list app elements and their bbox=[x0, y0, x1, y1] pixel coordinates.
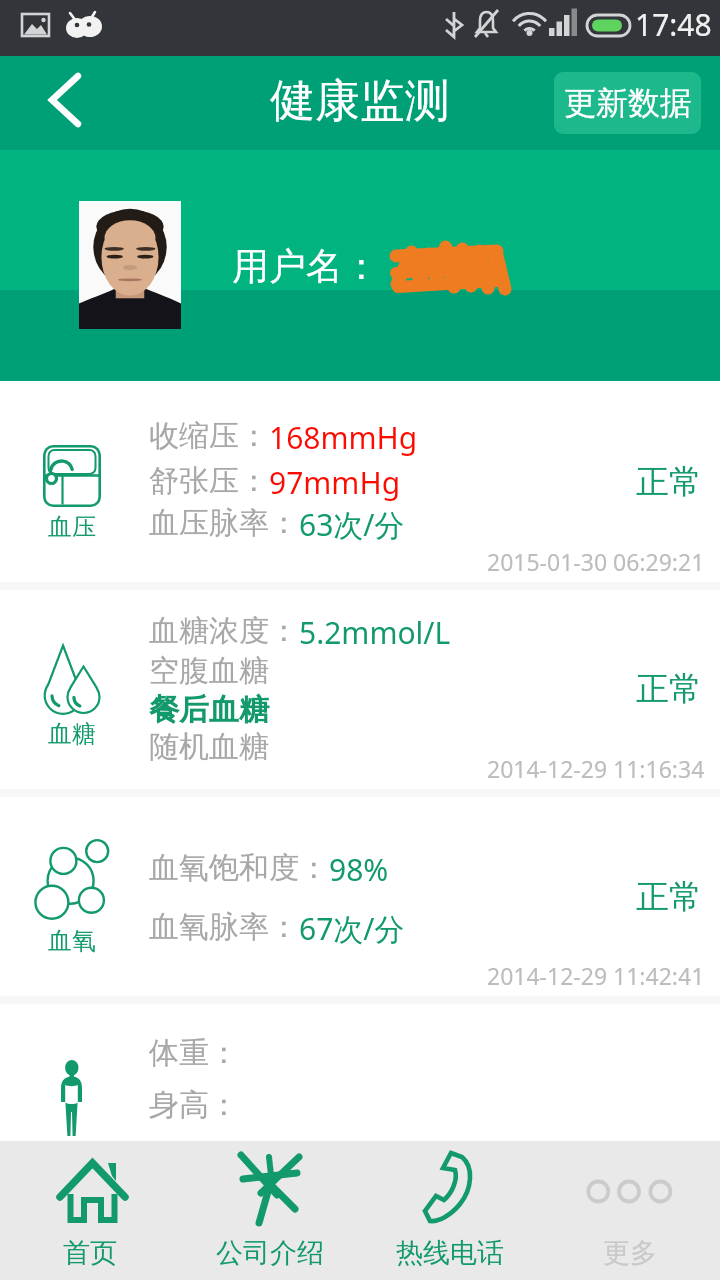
staticText: 正常 bbox=[636, 668, 702, 710]
staticText: 5.2mmol/L bbox=[299, 612, 451, 653]
staticText: 健康监测 bbox=[270, 73, 450, 130]
staticText: 收缩压： bbox=[149, 417, 269, 455]
button[interactable]: 公司介绍 bbox=[180, 1141, 360, 1280]
staticText: 血氧脉率： bbox=[149, 908, 299, 946]
button[interactable]: 首页 bbox=[0, 1141, 180, 1280]
staticText: 2015-01-30 06:29:21 bbox=[487, 546, 705, 577]
staticText: 首页 bbox=[63, 1236, 117, 1270]
staticText: 17:48 bbox=[635, 4, 712, 45]
button[interactable]: Back bbox=[30, 71, 94, 135]
staticText: 67次/分 bbox=[299, 908, 405, 949]
staticText: 血压脉率： bbox=[149, 504, 299, 542]
staticText: 更多 bbox=[603, 1236, 657, 1270]
staticText: 正常 bbox=[636, 461, 702, 503]
button[interactable]: 血氧 bbox=[0, 797, 720, 996]
staticText: 血压 bbox=[48, 512, 96, 542]
staticText: 97mmHg bbox=[269, 462, 401, 503]
button[interactable]: 热线电话 bbox=[360, 1141, 540, 1280]
staticText: 舒张压： bbox=[149, 462, 269, 500]
button[interactable]: 血压 bbox=[0, 381, 720, 582]
button[interactable]: 血糖 bbox=[0, 590, 720, 789]
staticText: 更新数据 bbox=[564, 83, 692, 123]
button[interactable]: 体重： bbox=[0, 1004, 720, 1140]
staticText: 用户名： bbox=[232, 243, 380, 290]
staticText: 168mmHg bbox=[269, 417, 418, 458]
staticText: 血糖浓度： bbox=[149, 612, 299, 650]
staticText: 63次/分 bbox=[299, 504, 405, 545]
staticText: 身高： bbox=[149, 1086, 239, 1124]
staticText: 热线电话 bbox=[396, 1236, 504, 1270]
staticText: 餐后血糖 bbox=[149, 691, 269, 729]
staticText: 98% bbox=[329, 849, 389, 890]
button[interactable]: 更新数据 bbox=[554, 72, 701, 134]
staticText: 2014-12-29 11:16:34 bbox=[487, 753, 705, 784]
staticText: 空腹血糖 bbox=[149, 652, 269, 690]
button[interactable]: 更多 bbox=[540, 1141, 720, 1280]
staticText: 血糖 bbox=[48, 719, 96, 749]
staticText: 体重： bbox=[149, 1034, 239, 1072]
staticText: 随机血糖 bbox=[149, 728, 269, 766]
staticText: 血氧饱和度： bbox=[149, 849, 329, 887]
staticText: 血氧 bbox=[48, 926, 96, 956]
staticText: 正常 bbox=[636, 876, 702, 918]
staticText: 2014-12-29 11:42:41 bbox=[487, 960, 705, 991]
staticText: 公司介绍 bbox=[216, 1236, 324, 1270]
